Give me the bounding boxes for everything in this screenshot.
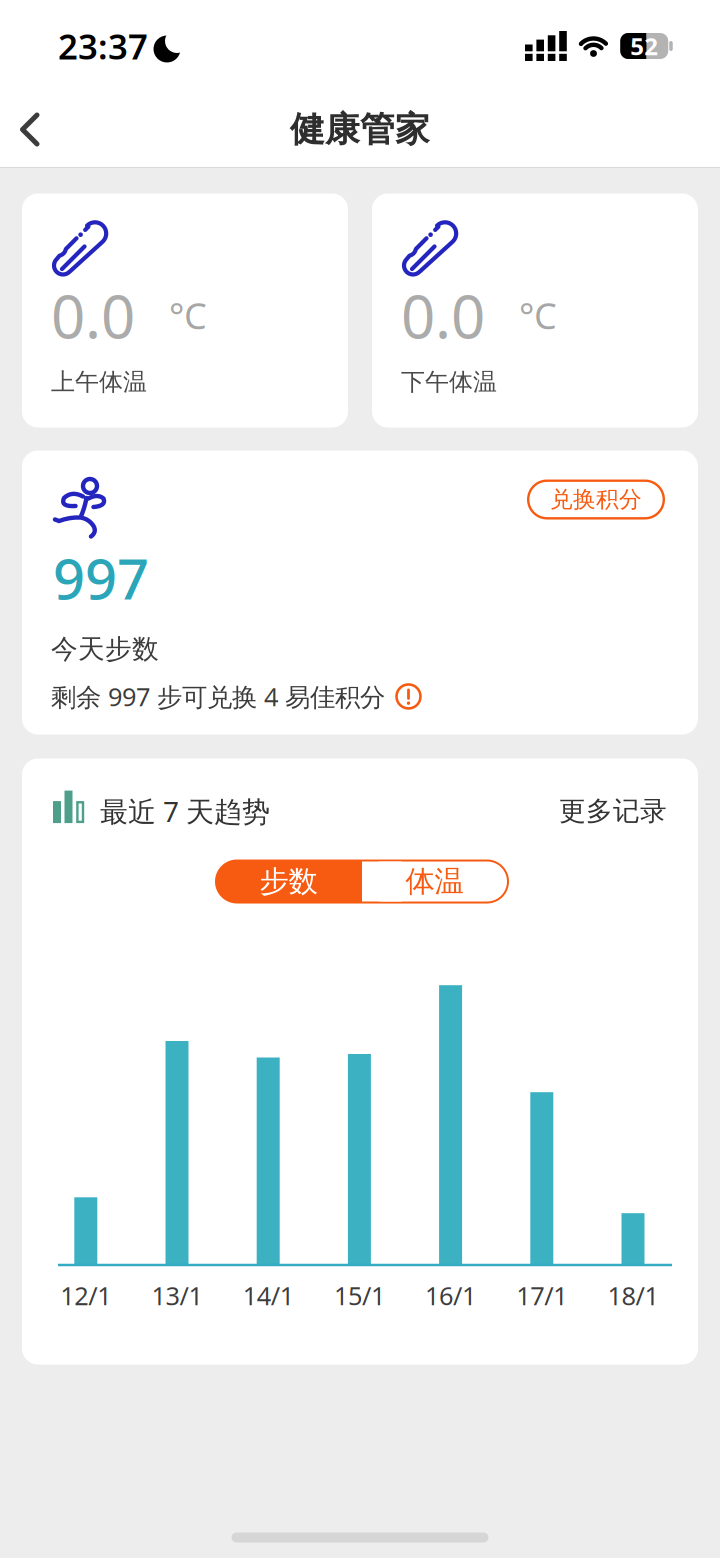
staticText: 更多记录 xyxy=(559,795,667,827)
staticText: 下午体温 xyxy=(401,367,497,397)
staticText: 剩余 997 步可兑换 4 易佳积分 xyxy=(51,680,385,713)
staticText: °C xyxy=(519,291,557,339)
staticText: 13/1 xyxy=(151,1279,202,1312)
staticText: 15/1 xyxy=(334,1279,385,1312)
staticText: 997 xyxy=(53,540,149,615)
staticText: 体温 xyxy=(405,863,463,899)
button[interactable]: 体温 xyxy=(215,863,360,899)
staticText: 12/1 xyxy=(60,1279,111,1312)
staticText: 健康管家 xyxy=(290,108,430,151)
staticText: 17/1 xyxy=(516,1279,567,1312)
staticText: °C xyxy=(169,291,207,339)
staticText: 最近 7 天趋势 xyxy=(100,792,270,830)
button[interactable] xyxy=(0,112,54,146)
button[interactable] xyxy=(395,683,422,710)
staticText: 14/1 xyxy=(243,1279,294,1312)
staticText: 18/1 xyxy=(607,1279,658,1312)
staticText: 兑换积分 xyxy=(550,486,642,513)
button[interactable]: 更多记录 xyxy=(559,795,667,827)
staticText: 0.0 xyxy=(401,275,485,355)
staticText: 步数 xyxy=(259,863,317,899)
staticText: 23:37 xyxy=(58,23,148,69)
staticText: 16/1 xyxy=(425,1279,476,1312)
staticText: 0.0 xyxy=(51,275,135,355)
staticText: 上午体温 xyxy=(51,367,147,397)
button[interactable]: 步数 xyxy=(215,863,362,899)
button[interactable]: 兑换积分 xyxy=(527,479,665,519)
staticText: 今天步数 xyxy=(51,633,159,666)
staticText: 52 xyxy=(630,30,658,62)
